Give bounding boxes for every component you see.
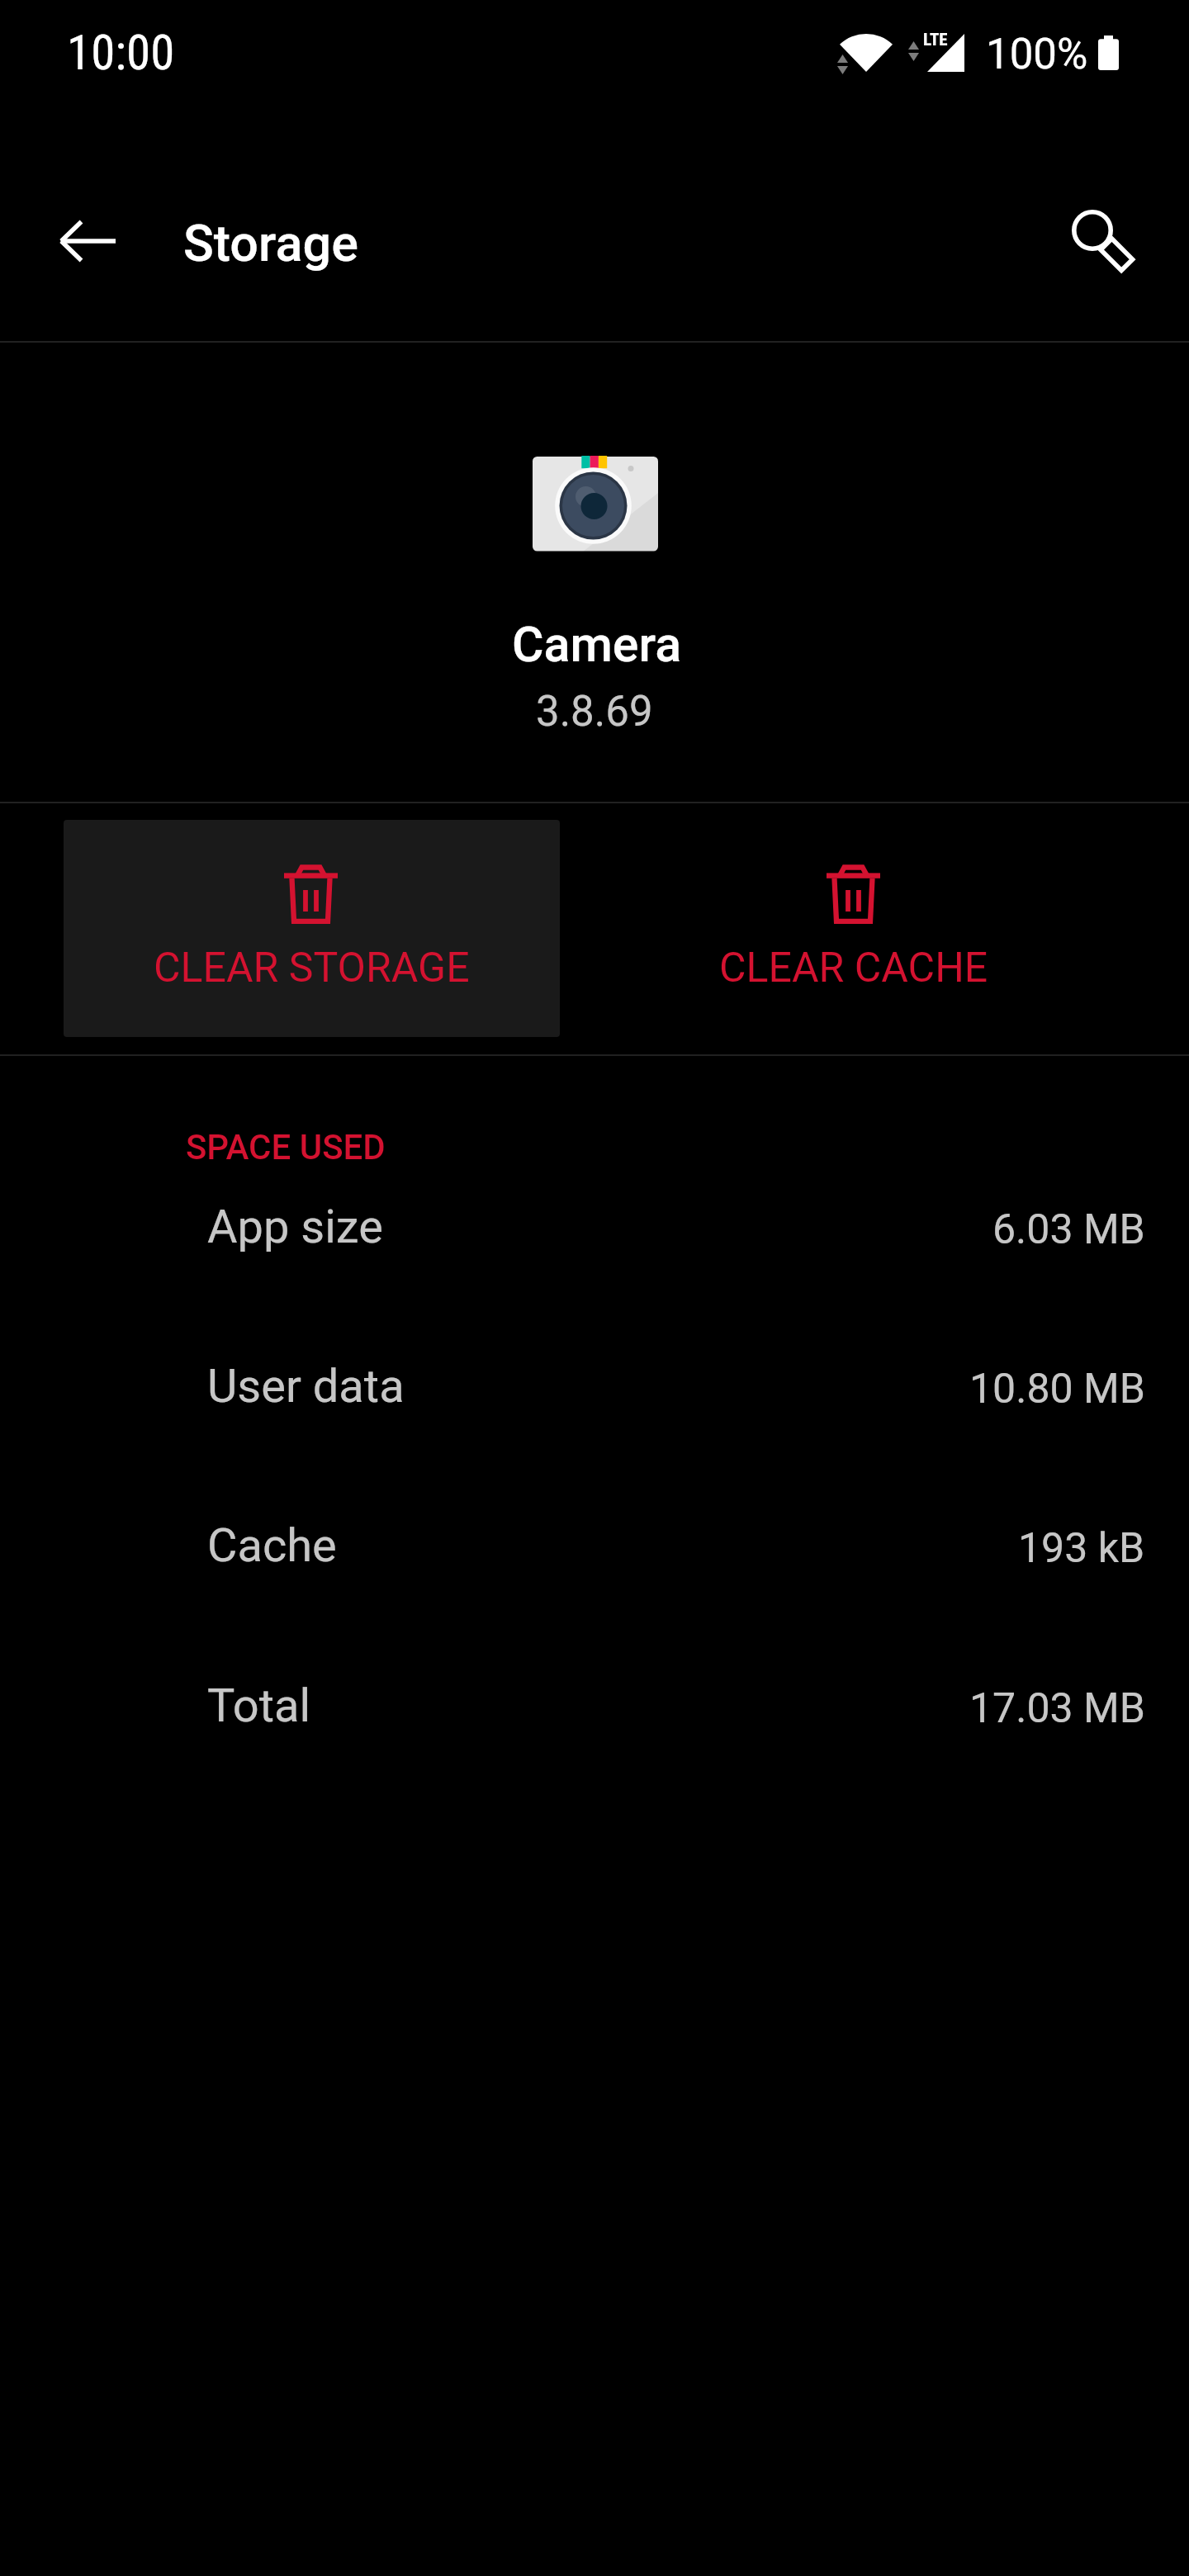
- staticText: CLEAR CACHE: [719, 944, 988, 992]
- staticText: 17.03 MB: [969, 1684, 1145, 1733]
- button[interactable]: Search: [1043, 182, 1162, 301]
- staticText: Total: [207, 1679, 311, 1733]
- staticText: 100%: [986, 30, 1088, 79]
- staticText: CLEAR STORAGE: [154, 944, 470, 992]
- staticText: Storage: [183, 214, 358, 272]
- staticText: 3.8.69: [536, 687, 653, 736]
- button[interactable]: CLEAR CACHE: [605, 820, 1101, 1037]
- staticText: User data: [207, 1359, 405, 1413]
- staticText: LTE: [923, 30, 948, 50]
- button[interactable]: Total: [0, 1641, 1189, 1800]
- staticText: 193 kB: [1018, 1524, 1145, 1573]
- staticText: 10:00: [67, 24, 175, 81]
- button[interactable]: Cache: [0, 1480, 1189, 1640]
- button[interactable]: User data: [0, 1321, 1189, 1480]
- staticText: Cache: [207, 1518, 337, 1573]
- staticText: 10.80 MB: [969, 1365, 1145, 1413]
- staticText: SPACE USED: [186, 1127, 386, 1167]
- staticText: App size: [207, 1200, 383, 1254]
- button[interactable]: App size: [0, 1162, 1189, 1321]
- button[interactable]: Back: [28, 182, 147, 301]
- staticText: Camera: [512, 616, 682, 673]
- button[interactable]: CLEAR STORAGE: [64, 820, 560, 1037]
- staticText: 6.03 MB: [992, 1205, 1145, 1254]
